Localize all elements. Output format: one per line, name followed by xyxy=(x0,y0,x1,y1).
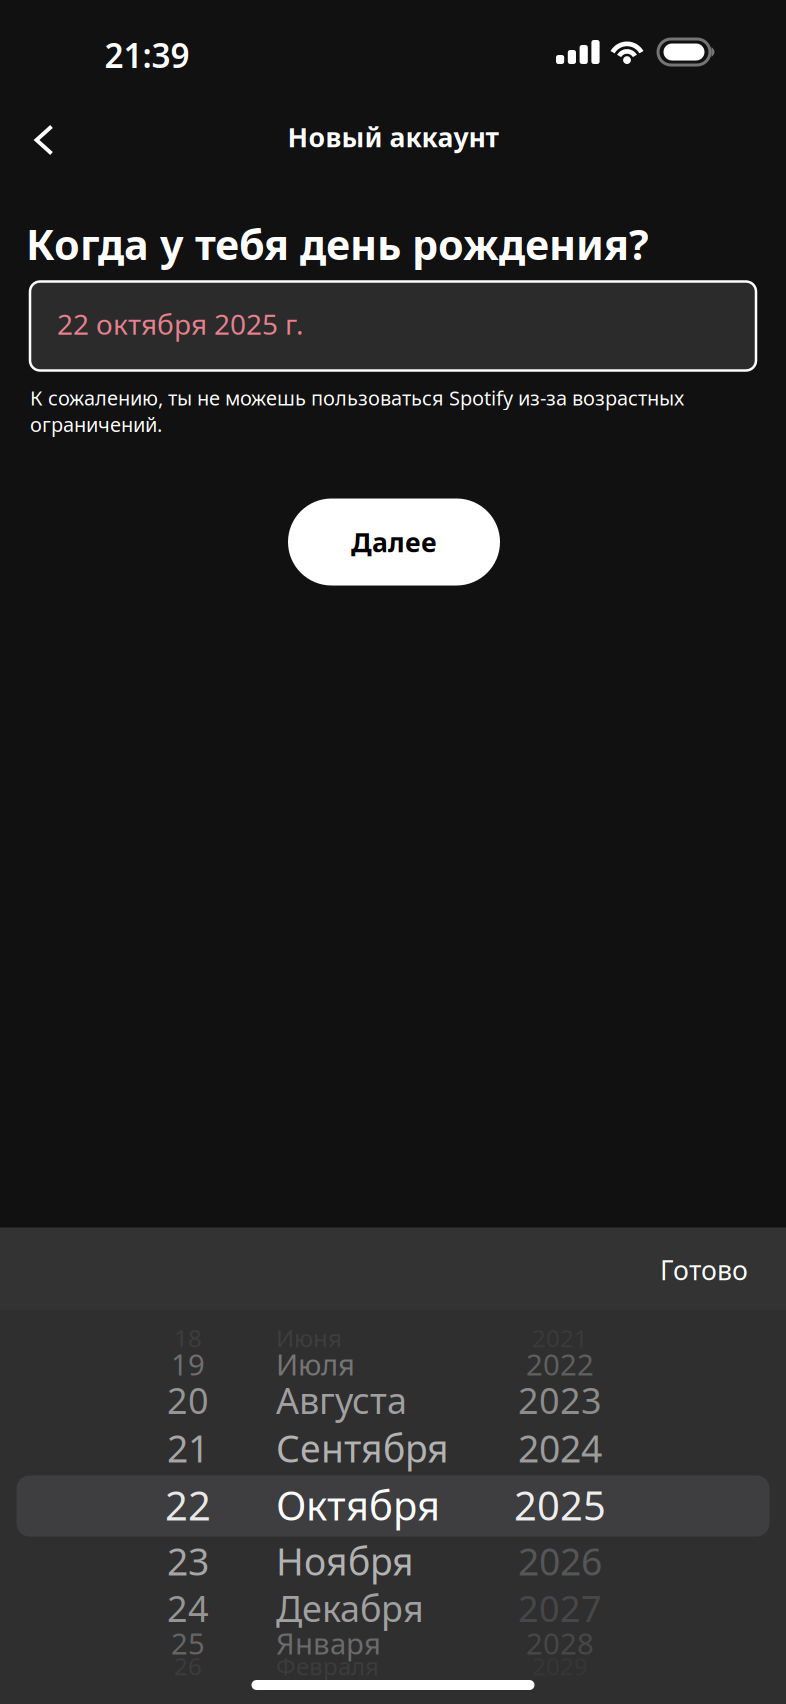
staticText: 2024 xyxy=(518,1423,602,1473)
staticText: 23 xyxy=(167,1536,209,1586)
staticText: К сожалению, ты не можешь пользоваться S… xyxy=(30,384,684,437)
staticText: 24 xyxy=(167,1584,209,1632)
staticText: 22 xyxy=(165,1478,211,1531)
staticText: Февраля xyxy=(276,1650,379,1682)
staticText: 2027 xyxy=(518,1584,602,1632)
staticText: 2029 xyxy=(532,1650,588,1682)
staticText: Готово xyxy=(660,1252,748,1288)
staticText: Декабря xyxy=(276,1584,424,1632)
staticText: Июля xyxy=(276,1344,355,1383)
button[interactable]: Назад xyxy=(6,102,82,178)
staticText: 2026 xyxy=(518,1536,602,1586)
staticText: Августа xyxy=(276,1376,407,1424)
staticText: 22 октября 2025 г. xyxy=(57,305,304,343)
staticText: Далее xyxy=(351,524,437,560)
staticText: 2023 xyxy=(518,1376,602,1424)
staticText: 2025 xyxy=(514,1478,606,1531)
button[interactable]: Готово xyxy=(548,1228,748,1311)
staticText: 19 xyxy=(171,1344,205,1383)
staticText: Новый аккаунт xyxy=(287,119,498,155)
staticText: 2022 xyxy=(526,1344,594,1383)
staticText: 18 xyxy=(174,1322,202,1354)
button[interactable]: Далее xyxy=(288,498,500,585)
staticText: 26 xyxy=(174,1650,202,1682)
staticText: Когда у тебя день рождения? xyxy=(26,217,649,271)
staticText: Октября xyxy=(276,1478,440,1531)
button[interactable]: 22 октября 2025 г. xyxy=(30,281,756,370)
staticText: Января xyxy=(276,1623,381,1662)
staticText: 21 xyxy=(167,1423,209,1473)
staticText: 2028 xyxy=(526,1623,594,1662)
staticText: Ноября xyxy=(276,1536,414,1586)
staticText: 21:39 xyxy=(104,33,189,77)
staticText: 2021 xyxy=(532,1322,588,1354)
staticText: Июня xyxy=(276,1322,342,1354)
staticText: Сентября xyxy=(276,1423,449,1473)
staticText: 20 xyxy=(167,1376,209,1424)
staticText: 25 xyxy=(171,1623,205,1662)
